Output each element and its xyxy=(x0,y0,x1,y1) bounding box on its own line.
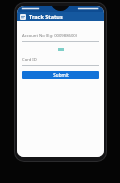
staticText: Card ID xyxy=(22,57,37,63)
staticText: Account No (Eg: 000988600) xyxy=(22,33,77,39)
other: App logo xyxy=(20,14,26,20)
button[interactable]: Account No (Eg: 000988600) xyxy=(22,33,99,42)
staticText: Submit xyxy=(53,72,69,78)
button[interactable]: Card ID xyxy=(22,57,99,66)
button[interactable]: Submit xyxy=(22,71,99,79)
staticText: Track Status xyxy=(29,13,63,20)
